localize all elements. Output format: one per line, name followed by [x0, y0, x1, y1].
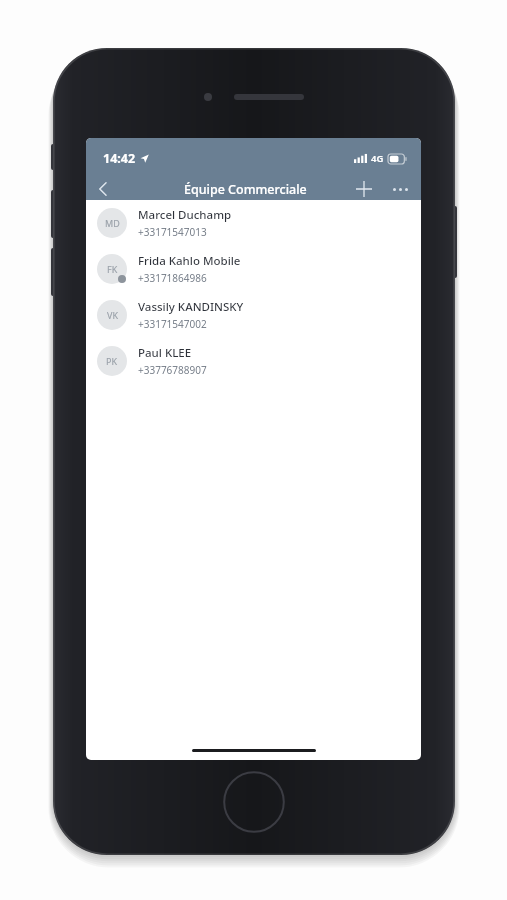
- button[interactable]: VK: [86, 292, 421, 338]
- staticText: 4G: [371, 152, 384, 165]
- staticText: +33776788907: [138, 363, 207, 377]
- staticText: Équipe Commerciale: [184, 181, 307, 198]
- button[interactable]: PK: [86, 338, 421, 384]
- button[interactable]: Back: [86, 178, 120, 200]
- staticText: PK: [106, 355, 118, 367]
- button[interactable]: More options: [385, 178, 415, 200]
- staticText: VK: [107, 309, 118, 321]
- staticText: FK: [107, 263, 118, 275]
- staticText: +33171547002: [138, 317, 207, 331]
- staticText: +33171864986: [138, 271, 207, 285]
- staticText: 14:42: [103, 150, 136, 167]
- button[interactable]: MD: [86, 200, 421, 246]
- staticText: +33171547013: [138, 225, 207, 239]
- staticText: MD: [105, 217, 120, 229]
- button[interactable]: FK: [86, 246, 421, 292]
- other: Home: [223, 771, 285, 833]
- button[interactable]: Add contact: [349, 178, 379, 200]
- staticText: Marcel Duchamp: [138, 207, 232, 223]
- staticText: Paul KLEE: [138, 345, 192, 361]
- staticText: Frida Kahlo Mobile: [138, 253, 241, 269]
- staticText: Vassily KANDINSKY: [138, 299, 244, 315]
